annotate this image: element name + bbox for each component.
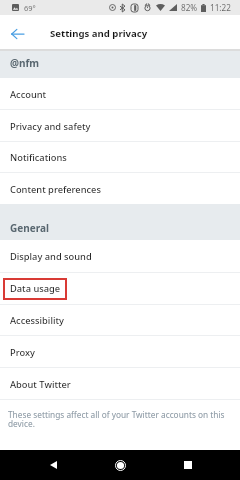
button[interactable]: Content preferences	[0, 173, 240, 205]
button[interactable]: Navigate up	[0, 17, 34, 51]
staticText: Display and sound	[10, 250, 92, 263]
button[interactable]: Accessibility	[0, 304, 240, 336]
staticText: Notifications	[10, 151, 67, 164]
button[interactable]: Account	[0, 78, 240, 110]
staticText: General	[10, 221, 49, 235]
button[interactable]: Home	[105, 450, 135, 480]
button[interactable]: Data usage	[0, 272, 240, 304]
button[interactable]: Display and sound	[0, 240, 240, 272]
staticText: Accessibility	[10, 314, 64, 327]
staticText: Data usage	[10, 282, 61, 295]
staticText: Proxy	[10, 346, 35, 359]
staticText: 11:22	[210, 2, 231, 13]
staticText: Settings and privacy	[50, 27, 148, 40]
staticText: Privacy and safety	[10, 120, 91, 133]
button[interactable]: Privacy and safety	[0, 110, 240, 142]
button[interactable]: About Twitter	[0, 368, 240, 400]
button[interactable]: Proxy	[0, 336, 240, 368]
staticText: 69°	[24, 3, 36, 13]
staticText: About Twitter	[10, 378, 71, 391]
staticText: Content preferences	[10, 183, 101, 196]
staticText: Account	[10, 88, 47, 101]
staticText: @nfm	[10, 56, 40, 70]
staticText: 82%	[181, 2, 198, 13]
button[interactable]: Recent apps	[173, 450, 203, 480]
button[interactable]: Notifications	[0, 141, 240, 173]
button[interactable]: Back	[38, 450, 68, 480]
staticText: These settings affect all of your Twitte…	[8, 409, 234, 429]
